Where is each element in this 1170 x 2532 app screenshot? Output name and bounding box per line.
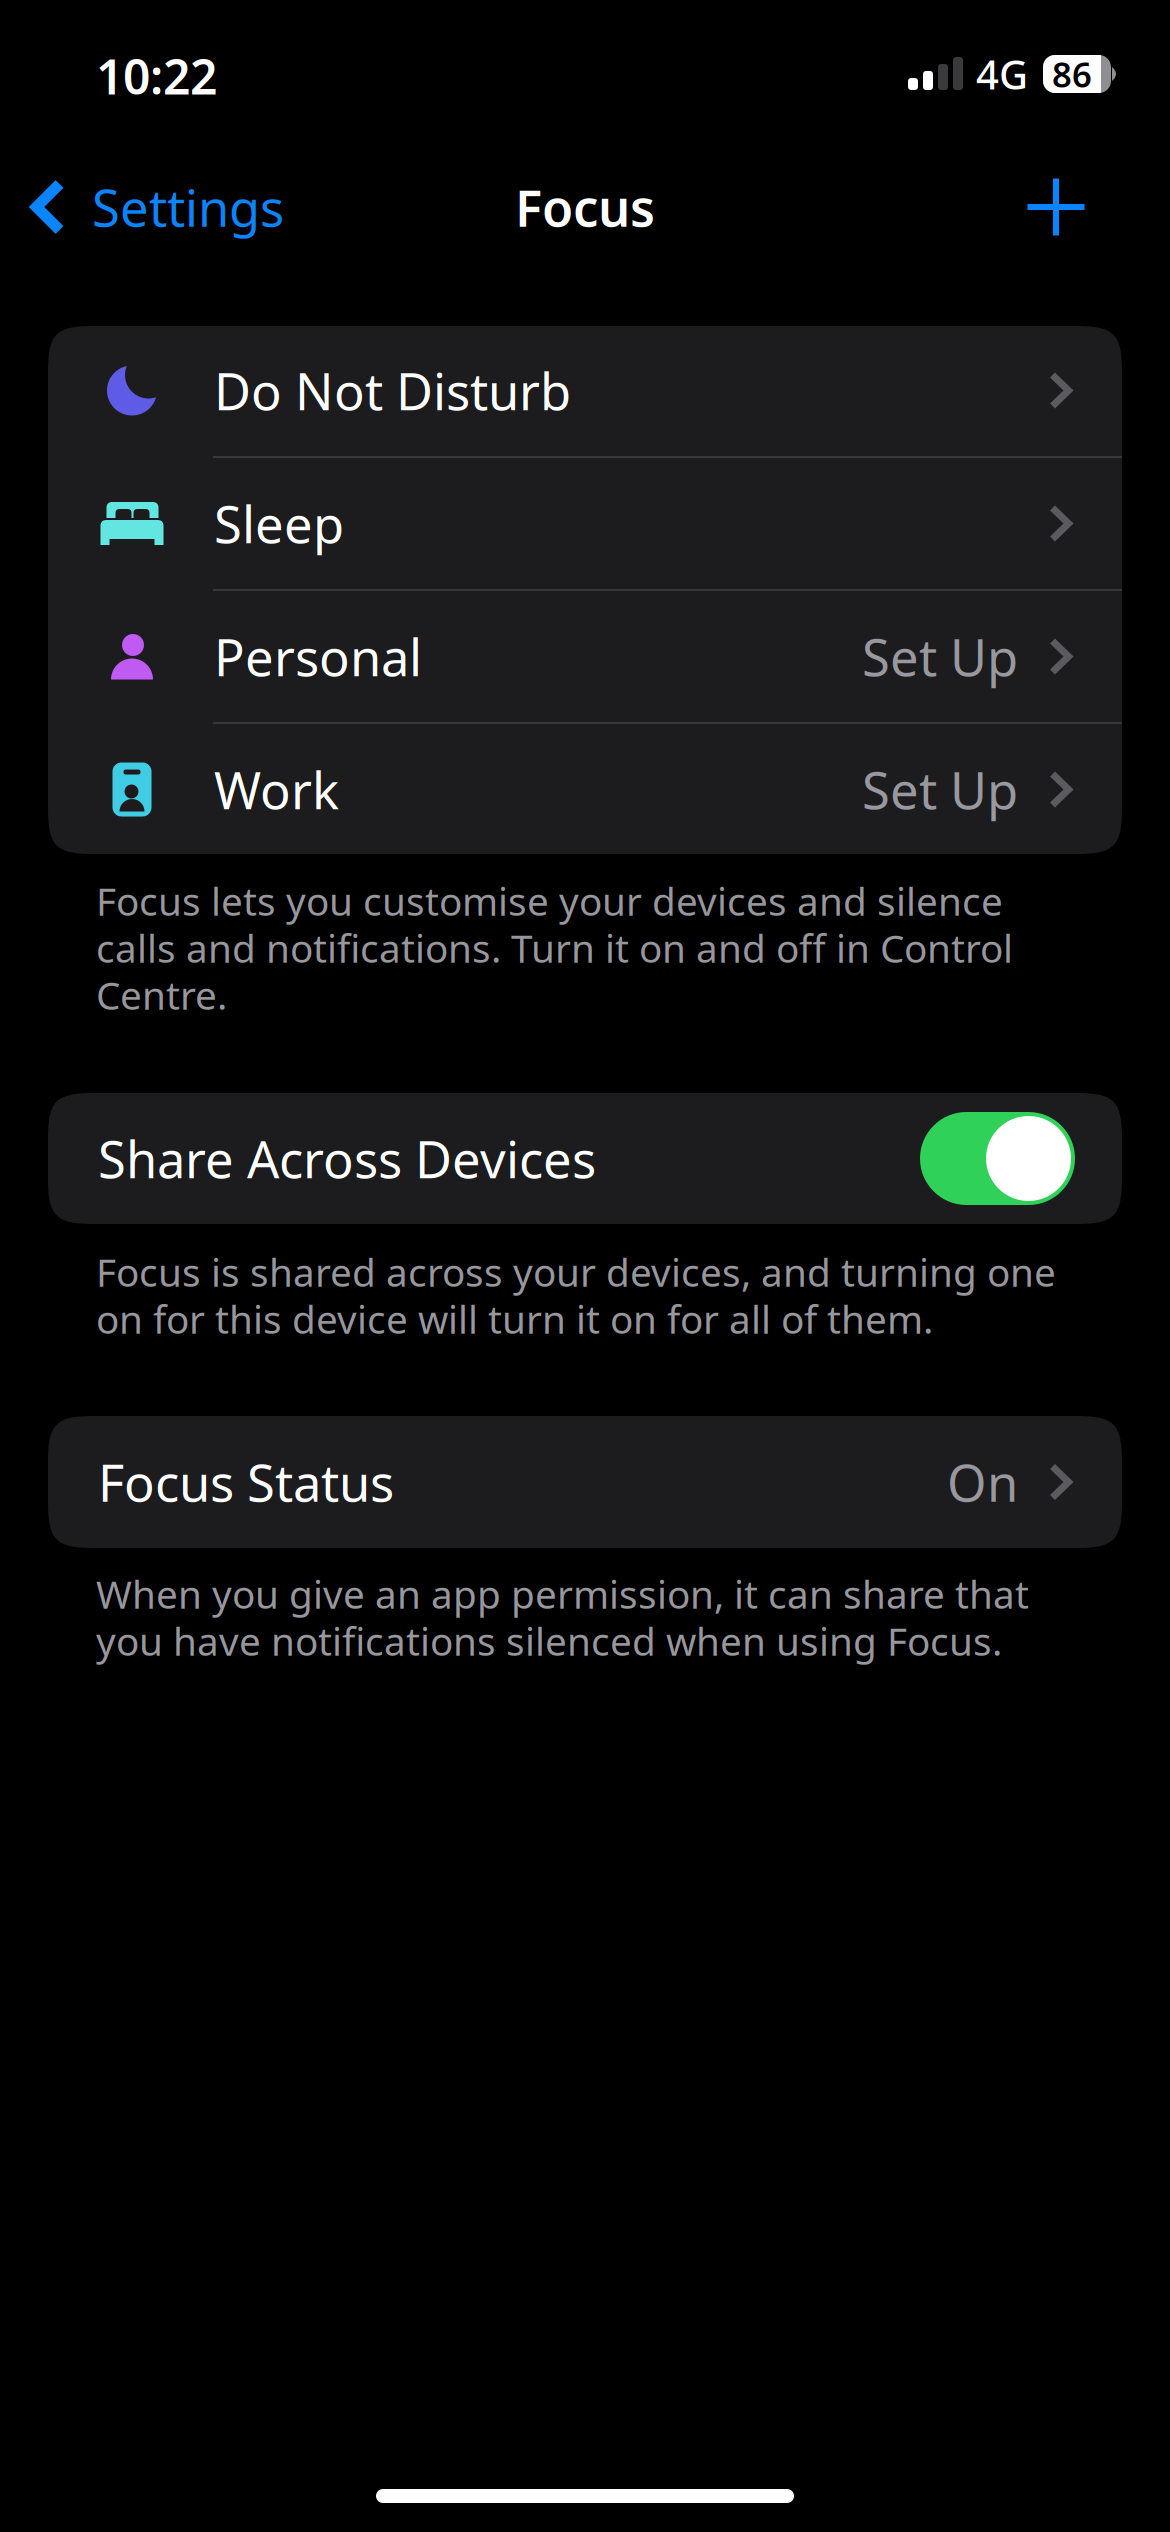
staticText: When you give an app permission, it can … — [96, 1568, 1029, 1619]
staticText: 86 — [1052, 51, 1092, 97]
staticText: On — [947, 1448, 1018, 1516]
staticText: on for this device will turn it on for a… — [96, 1293, 933, 1344]
staticText: Focus lets you customise your devices an… — [96, 875, 1003, 926]
staticText: Focus is shared across your devices, and… — [96, 1246, 1056, 1297]
staticText: 10:22 — [96, 44, 217, 108]
staticText: Centre. — [96, 969, 227, 1020]
staticText: Set Up — [862, 756, 1018, 823]
staticText: Share Across Devices — [98, 1125, 596, 1192]
staticText: Work — [214, 756, 339, 823]
staticText: calls and notifications. Turn it on and … — [96, 922, 1013, 973]
button[interactable]: Settings — [0, 157, 310, 257]
staticText: Do Not Disturb — [214, 357, 571, 424]
button[interactable]: Do Not Disturb — [48, 325, 1122, 456]
staticText: Sleep — [214, 490, 344, 557]
button[interactable]: Focus Status — [48, 1416, 1122, 1548]
staticText: 4G — [976, 47, 1028, 100]
button[interactable]: Work — [48, 724, 1122, 855]
staticText: Settings — [92, 173, 284, 241]
button[interactable]: Share Across Devices — [920, 1112, 1075, 1205]
button[interactable]: Sleep — [48, 458, 1122, 589]
staticText: Set Up — [862, 623, 1018, 690]
button[interactable]: Add Focus — [1001, 157, 1111, 257]
button[interactable]: Personal — [48, 591, 1122, 722]
staticText: Personal — [214, 623, 422, 690]
staticText: Focus — [515, 173, 655, 241]
staticText: you have notifications silenced when usi… — [96, 1615, 1002, 1666]
staticText: Focus Status — [98, 1448, 394, 1516]
